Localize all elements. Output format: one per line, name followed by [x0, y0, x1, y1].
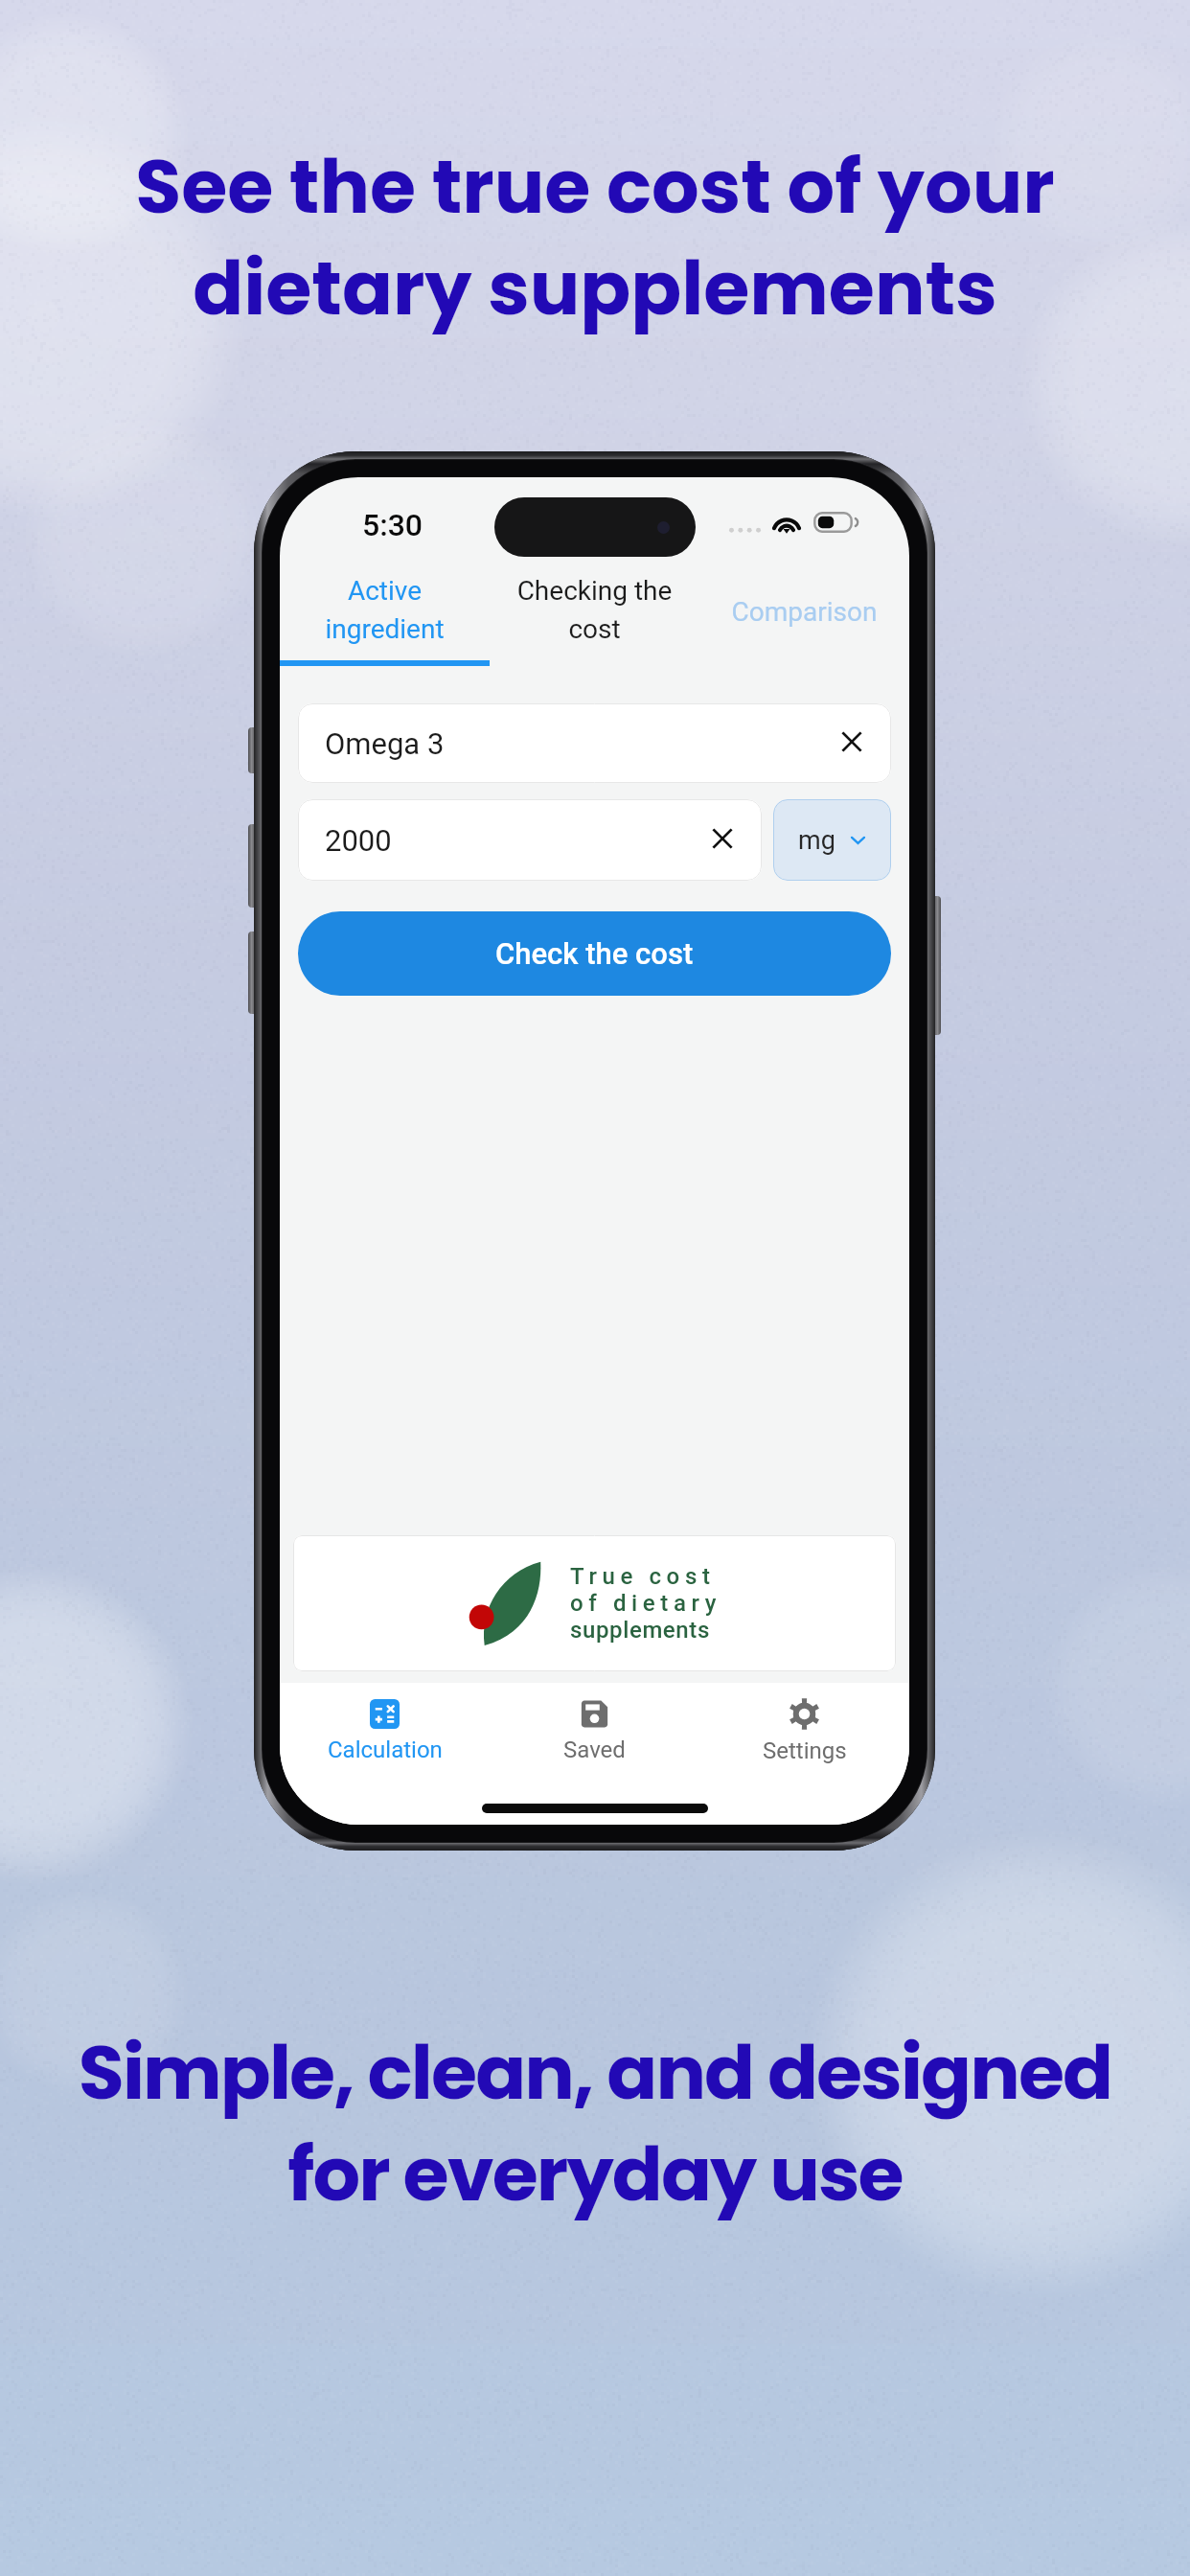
staticText: Comparison — [699, 596, 909, 628]
staticText: Omega 3 — [325, 726, 445, 761]
staticText: Simple, clean, and designed for everyday… — [0, 2020, 1190, 2227]
button[interactable]: Checking the cost — [490, 569, 699, 666]
staticText: True cost — [570, 1563, 716, 1590]
staticText: Check the cost — [495, 936, 694, 971]
staticText: mg — [798, 825, 835, 856]
staticText: Saved — [563, 1736, 626, 1763]
button[interactable]: Settings — [699, 1685, 909, 1777]
staticText: 2000 — [325, 823, 392, 858]
button[interactable]: Saved — [490, 1685, 699, 1777]
staticText: 5:30 — [362, 507, 423, 543]
staticText: of dietary — [570, 1590, 722, 1617]
staticText: Active ingredient — [280, 575, 490, 645]
button[interactable]: mg — [773, 799, 891, 881]
button[interactable]: Comparison — [699, 569, 909, 666]
staticText: See the true cost of your dietary supple… — [0, 134, 1190, 341]
button[interactable]: Clear ingredient — [834, 724, 870, 760]
button[interactable]: Active ingredient — [280, 569, 490, 666]
button[interactable]: Calculation — [280, 1685, 490, 1777]
button[interactable]: Omega 3 — [298, 703, 891, 783]
button[interactable]: Clear amount — [704, 820, 741, 857]
staticText: Calculation — [328, 1736, 443, 1763]
button[interactable]: Check the cost — [298, 911, 891, 996]
staticText: Settings — [763, 1737, 847, 1764]
button[interactable]: 2000 — [298, 799, 762, 881]
staticText: supplements — [570, 1617, 710, 1644]
button[interactable]: True cost — [293, 1535, 896, 1671]
staticText: Checking the cost — [490, 575, 699, 645]
